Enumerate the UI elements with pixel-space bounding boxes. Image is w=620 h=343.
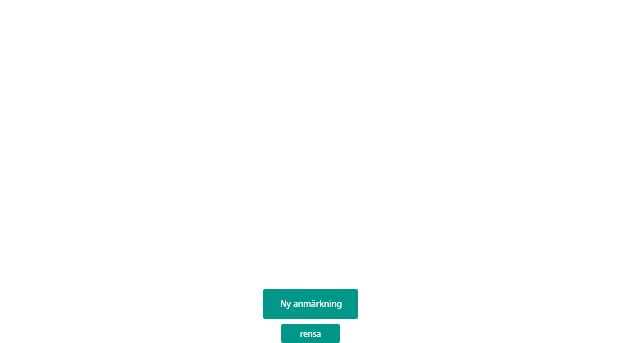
staticText: Ny anmärkning <box>280 298 342 310</box>
staticText: rensa <box>300 328 321 339</box>
button[interactable]: Ny anmärkning <box>263 289 358 319</box>
button[interactable]: rensa <box>281 324 340 343</box>
